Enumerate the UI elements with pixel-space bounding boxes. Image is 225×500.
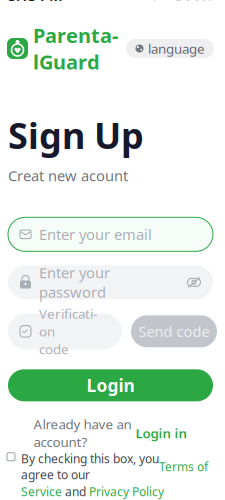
staticText: Service (21, 484, 62, 499)
staticText: Login (86, 374, 134, 397)
staticText: and (62, 484, 89, 499)
staticText: ParentalGuard (33, 22, 118, 75)
staticText: Creat new acount (8, 166, 128, 185)
button[interactable]: By checking this box, you agree to our (7, 451, 214, 499)
button[interactable]: Send code (131, 315, 217, 347)
staticText: language (148, 40, 205, 57)
button[interactable]: Login (8, 369, 213, 401)
staticText: Enter your email (39, 225, 152, 244)
staticText: 5:13 PM (8, 0, 63, 5)
staticText: Verification code (39, 305, 97, 358)
button[interactable]: language (126, 39, 214, 58)
staticText: Already have an account? (33, 415, 131, 451)
staticText: Enter your password (39, 263, 110, 302)
staticText: Privacy Policy (89, 484, 164, 499)
staticText: By checking this box, you agree to our (21, 451, 159, 483)
staticText: 70% (185, 0, 213, 4)
staticText: Login in (135, 424, 187, 442)
staticText: Send code (138, 322, 209, 341)
button[interactable]: Already have an account? (8, 415, 213, 451)
button[interactable]: Show password (186, 275, 202, 289)
staticText: Terms of (159, 459, 208, 475)
staticText: Sign Up (8, 111, 144, 159)
